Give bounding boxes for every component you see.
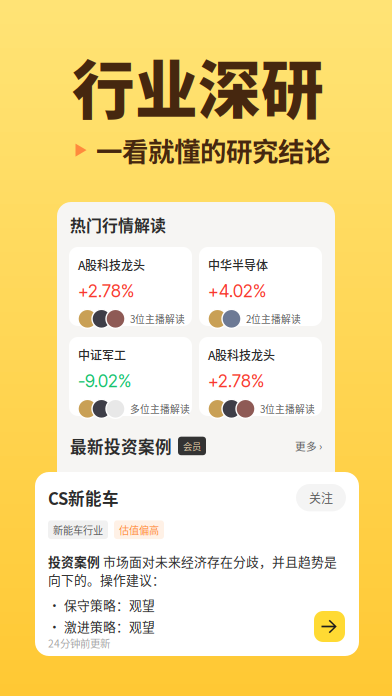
staticText: 投资案例 市场面对未来经济存在分歧，并且趋势是向下的。操作建议： xyxy=(48,552,337,588)
staticText: 关注 xyxy=(309,489,333,506)
staticText: 2位主播解读 xyxy=(246,312,301,326)
staticText: CS新能车 xyxy=(48,486,119,510)
staticText: 3位主播解读 xyxy=(130,312,185,326)
staticText: 估值偏高 xyxy=(119,522,159,537)
staticText: • 保守策略：观望 xyxy=(48,595,155,614)
staticText: 会员 xyxy=(183,439,201,453)
staticText: +2.78% xyxy=(208,370,264,391)
button[interactable]: 关注 xyxy=(296,484,346,511)
staticText: 一看就懂的研究结论 xyxy=(96,131,330,169)
staticText: 最新投资案例 xyxy=(70,434,172,458)
staticText: 行业深研 xyxy=(72,40,324,131)
staticText: A股科技龙头 xyxy=(78,256,145,273)
button[interactable]: 中证军工 xyxy=(69,337,192,416)
button[interactable]: A股科技龙头 xyxy=(69,247,192,326)
button[interactable]: 中华半导体 xyxy=(199,247,322,326)
staticText: 3位主播解读 xyxy=(260,402,315,416)
staticText: 热门行情解读 xyxy=(70,213,166,236)
staticText: 多位主播解读 xyxy=(130,402,190,416)
staticText: 新能车行业 xyxy=(53,522,103,537)
staticText: +2.78% xyxy=(78,280,134,301)
staticText: A股科技龙头 xyxy=(208,346,275,363)
button[interactable]: 查看详情 xyxy=(314,611,345,642)
staticText: • 激进策略：观望 xyxy=(48,617,155,635)
staticText: 24分钟前更新 xyxy=(48,635,110,650)
staticText: 中华半导体 xyxy=(208,256,268,273)
staticText: +4.02% xyxy=(208,280,266,301)
button[interactable]: A股科技龙头 xyxy=(199,337,322,416)
staticText: -9.02% xyxy=(78,370,131,391)
staticText: 中证军工 xyxy=(78,346,126,363)
staticText: 更多 › xyxy=(295,438,322,454)
